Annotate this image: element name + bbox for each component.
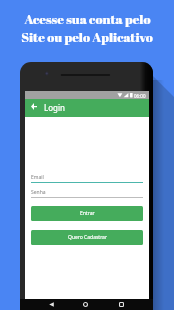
staticText: Login [44,102,65,113]
staticText: Senha [31,189,46,196]
button[interactable]: Quero Cadastrar [31,230,143,245]
staticText: Entrar [80,210,95,217]
button[interactable]: Recents [116,299,127,310]
staticText: Email [31,174,44,181]
staticText: Quero Cadastrar [68,234,107,241]
staticText: 06:00 [134,93,146,99]
button[interactable]: Back [46,299,57,310]
staticText: Acesse sua conta pelo [24,10,151,28]
staticText: Site ou pelo Aplicativo [21,28,153,46]
button[interactable]: Back [28,97,40,115]
button[interactable]: Entrar [31,206,143,221]
button[interactable]: Home [80,299,91,310]
